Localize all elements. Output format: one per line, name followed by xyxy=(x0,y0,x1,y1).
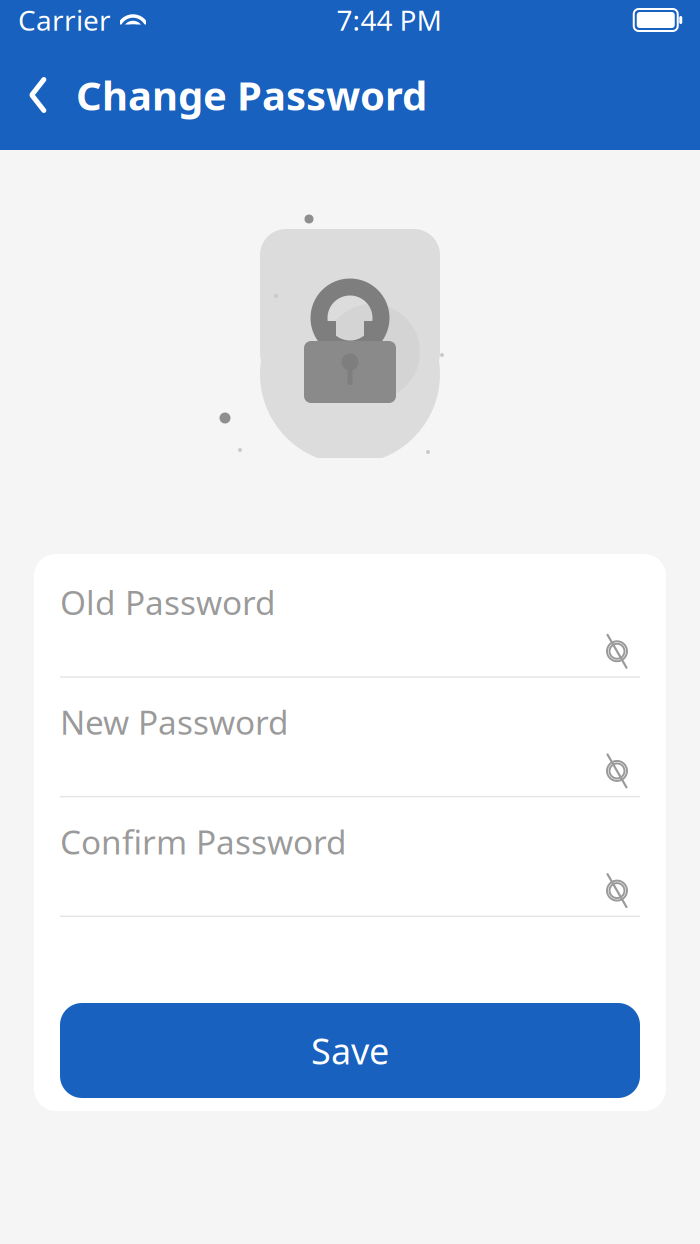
button[interactable]: Show Confirm Password xyxy=(596,870,640,912)
button[interactable]: Show New Password xyxy=(596,750,640,792)
button[interactable]: Save xyxy=(60,1003,640,1098)
button[interactable]: Show Old Password xyxy=(596,630,640,672)
staticText: Carrier xyxy=(18,1,111,39)
staticText: Confirm Password xyxy=(60,819,347,864)
staticText: Change Password xyxy=(76,68,427,121)
staticText: New Password xyxy=(60,700,289,744)
button[interactable]: Back xyxy=(18,68,58,122)
staticText: Old Password xyxy=(60,580,276,624)
staticText: 7:44 PM xyxy=(336,1,441,39)
staticText: Save xyxy=(311,1027,389,1074)
